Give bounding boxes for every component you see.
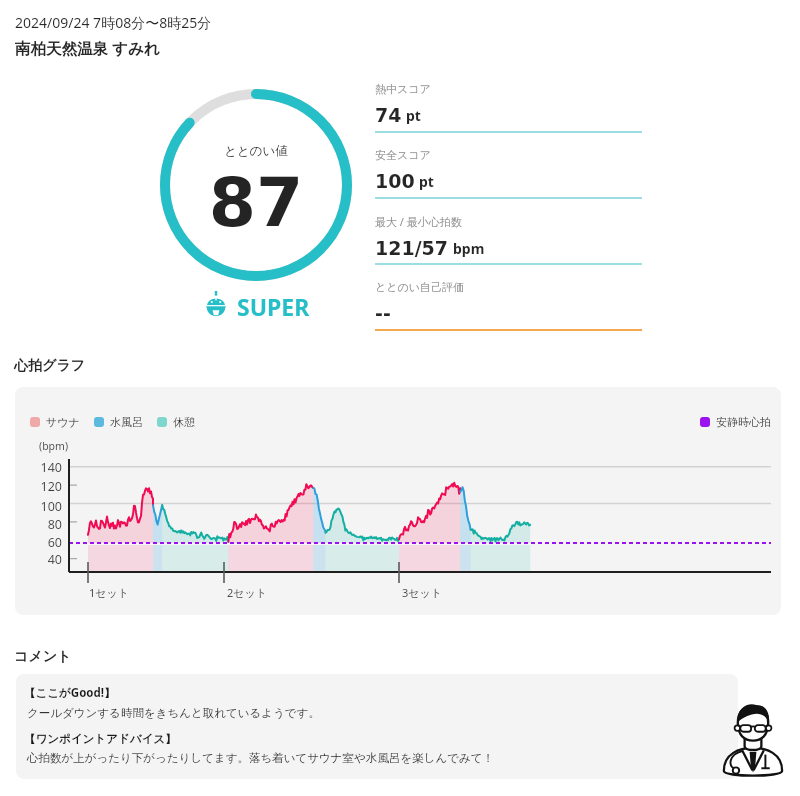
staticText: (bpm) xyxy=(39,439,69,453)
staticText: 74 xyxy=(375,104,402,126)
staticText: コメント xyxy=(14,648,72,666)
button[interactable]: 【ここがGood!】 xyxy=(16,674,738,779)
staticText: bpm xyxy=(453,239,485,258)
button[interactable]: 熱中スコア xyxy=(375,82,642,140)
staticText: 40 xyxy=(32,551,62,568)
staticText: pt xyxy=(406,106,421,125)
button[interactable]: ととのい自己評価 xyxy=(375,280,642,338)
staticText: 100 xyxy=(32,498,62,515)
button[interactable]: 休憩 xyxy=(157,415,195,429)
button[interactable]: 水風呂 xyxy=(94,415,143,429)
staticText: 安静時心拍 xyxy=(716,415,771,429)
button[interactable]: サウナ xyxy=(30,415,80,429)
button[interactable]: SUPER rank xyxy=(200,289,314,323)
staticText: 心拍グラフ xyxy=(14,357,85,375)
staticText: ととのい自己評価 xyxy=(375,280,465,294)
button[interactable]: 最大 / 最小心拍数 xyxy=(375,214,642,272)
staticText: 休憩 xyxy=(173,415,195,429)
staticText: 【ワンポイントアドバイス】 xyxy=(24,732,177,746)
staticText: クールダウンする時間をきちんと取れているようです。 xyxy=(27,706,320,720)
staticText: 60 xyxy=(32,534,62,551)
staticText: 140 xyxy=(32,459,62,476)
staticText: 水風呂 xyxy=(110,415,143,429)
staticText: -- xyxy=(375,302,391,324)
staticText: 80 xyxy=(32,516,62,533)
staticText: 87 xyxy=(155,163,357,242)
staticText: 安全スコア xyxy=(375,148,431,162)
staticText: 3セット xyxy=(402,585,443,600)
staticText: 南柏天然温泉 すみれ xyxy=(15,37,160,58)
staticText: SUPER xyxy=(237,291,310,322)
staticText: 120 xyxy=(32,478,62,495)
staticText: 熱中スコア xyxy=(375,82,431,96)
button[interactable]: Heart rate graph xyxy=(15,387,781,615)
staticText: 【ここがGood!】 xyxy=(24,685,116,701)
staticText: 100 xyxy=(375,170,415,192)
staticText: サウナ xyxy=(46,415,80,429)
other: Doctor avatar xyxy=(722,700,784,778)
staticText: 1セット xyxy=(89,585,130,600)
staticText: 2024/09/24 7時08分〜8時25分 xyxy=(15,13,212,32)
button[interactable]: 安全スコア xyxy=(375,148,642,206)
staticText: 121/57 xyxy=(375,237,449,259)
staticText: ととのい値 xyxy=(155,143,357,159)
button[interactable]: 安静時心拍 xyxy=(700,415,771,429)
staticText: 心拍数が上がったり下がったりしてます。落ち着いてサウナ室や水風呂を楽しんでみて！ xyxy=(27,751,495,765)
staticText: 最大 / 最小心拍数 xyxy=(375,214,462,229)
staticText: 2セット xyxy=(227,585,268,600)
staticText: pt xyxy=(419,172,434,191)
